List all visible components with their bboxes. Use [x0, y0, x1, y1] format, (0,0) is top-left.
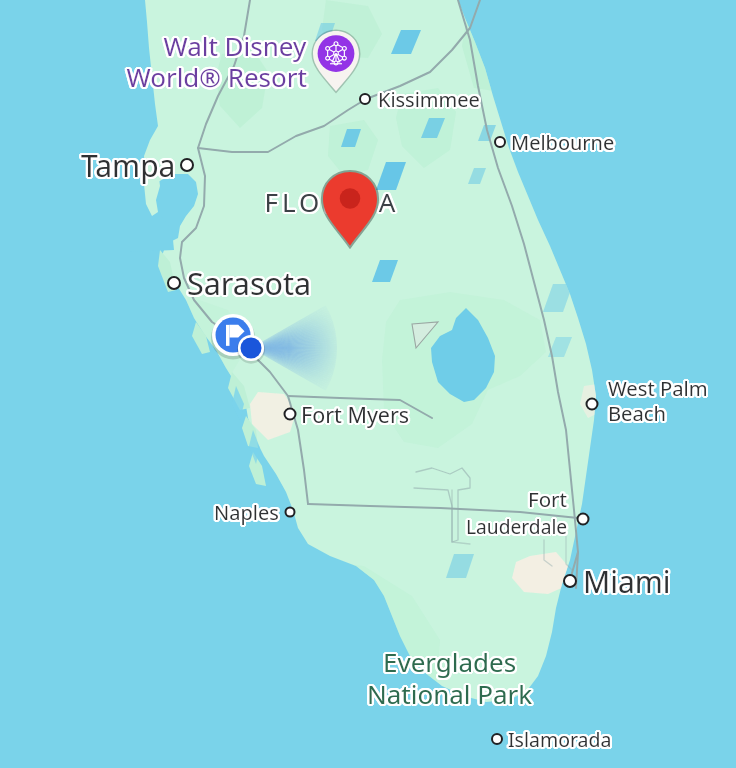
button[interactable]: Map of Florida — [0, 0, 736, 768]
